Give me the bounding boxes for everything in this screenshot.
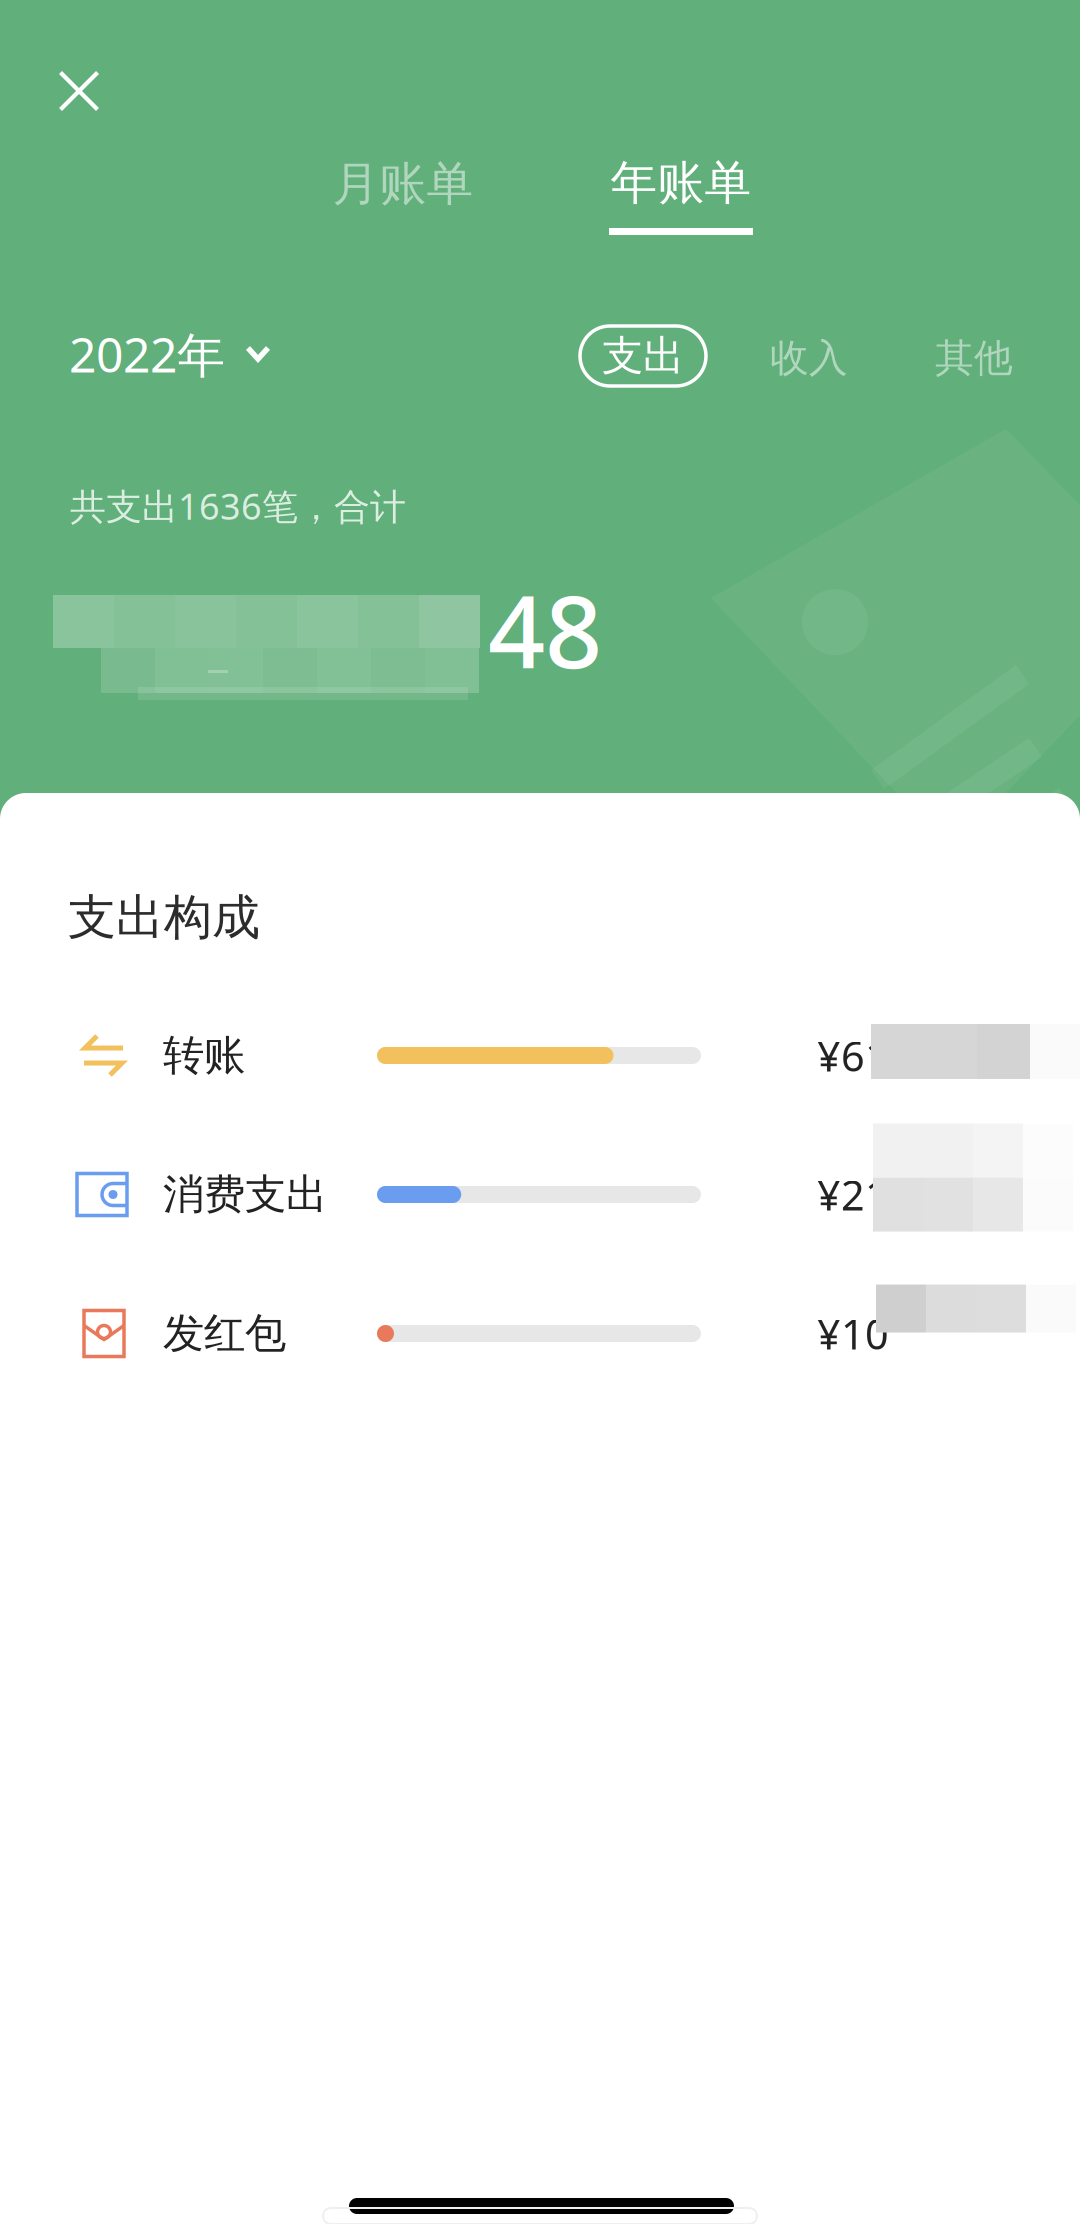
staticText: ¥61 [817, 1028, 889, 1083]
button[interactable]: 其他 [926, 328, 1022, 388]
staticText: 支出构成 [68, 888, 260, 947]
button[interactable]: 收入 [761, 328, 857, 388]
staticText: ¥10 [817, 1306, 889, 1361]
staticText: 2022年 [69, 322, 225, 386]
staticText: 收入 [770, 334, 848, 382]
staticText: 转账 [163, 1030, 245, 1081]
button[interactable]: 2022年 [69, 314, 271, 394]
button[interactable]: 年账单 [581, 140, 781, 260]
staticText: 支出 [602, 331, 684, 381]
staticText: 共支出1636笔，合计 [70, 482, 406, 530]
staticText: 月账单 [332, 155, 473, 213]
button[interactable]: 月账单 [303, 136, 503, 232]
staticText: 年账单 [610, 154, 751, 212]
staticText: ¥21 [817, 1167, 889, 1222]
button[interactable]: 消费支出 [0, 1125, 1080, 1264]
button[interactable]: 转账 [0, 986, 1080, 1125]
button[interactable]: 支出 [580, 326, 706, 386]
staticText: 发红包 [163, 1308, 286, 1359]
staticText: 48 [488, 563, 602, 696]
staticText: 其他 [935, 334, 1013, 382]
button[interactable]: Close [31, 43, 127, 139]
staticText: 消费支出 [163, 1169, 327, 1220]
button[interactable]: 发红包 [0, 1264, 1080, 1403]
